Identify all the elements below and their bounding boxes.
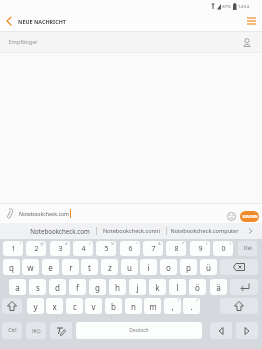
button[interactable]: f [69,279,86,295]
button[interactable]: j [129,279,146,295]
button[interactable]: h [109,279,126,295]
staticText: 6 [128,244,133,254]
button[interactable]: Notebookcheck.com [26,223,94,239]
button[interactable]: Del [238,241,257,256]
staticText: Ctrl [8,327,17,334]
staticText: l [176,282,179,293]
staticText: h [115,282,120,293]
button[interactable]: y [27,298,44,314]
button[interactable]: Notebookcheck.conni [98,223,164,239]
button[interactable]: d [49,279,66,295]
staticText: 14:54 [238,3,249,9]
button[interactable]: p [180,259,197,275]
button[interactable] [220,298,258,314]
button[interactable]: s [29,279,46,295]
staticText: @ [40,241,44,246]
button[interactable]: ö [189,279,206,295]
staticText: 7 [151,244,156,254]
button[interactable]: Deutsch [76,322,202,339]
button[interactable]: 2 [26,241,46,256]
staticText: c [73,301,77,312]
button[interactable] [230,279,258,295]
staticText: 2 [34,244,39,254]
staticText: f [76,282,79,293]
staticText: q [9,262,14,273]
button[interactable]: . [183,298,200,314]
button[interactable] [2,298,22,314]
staticText: 9 [198,244,203,254]
button[interactable]: 5 [96,241,116,256]
button[interactable]: o [160,259,177,275]
button[interactable]: g [89,279,106,295]
button[interactable]: b [105,298,122,314]
staticText: 4 [81,244,86,254]
button[interactable]: m [144,298,161,314]
button[interactable] [50,322,72,339]
staticText: ü [206,262,211,273]
button[interactable]: !#☺ [26,322,46,339]
staticText: , [171,301,174,312]
button[interactable]: 9 [190,241,210,256]
button[interactable]: , [164,298,181,314]
staticText: b [111,301,116,312]
staticText: d [55,282,60,293]
button[interactable]: a [9,279,26,295]
staticText: n [131,301,136,312]
button[interactable]: ü [200,259,217,275]
staticText: m [149,301,157,312]
button[interactable]: 3 [50,241,70,256]
staticText: s [36,282,40,293]
button[interactable] [227,212,236,221]
staticText: ) [229,241,231,246]
button[interactable]: r [62,259,79,275]
button[interactable]: u [121,259,138,275]
button[interactable]: t [81,259,98,275]
button[interactable]: Notebookcheck.computer [169,223,239,239]
button[interactable]: 4 [73,241,93,256]
button[interactable] [240,11,262,31]
button[interactable]: l [169,279,186,295]
button[interactable]: Empfänger [0,32,262,52]
staticText: Notebookcheck.com [30,227,90,235]
button[interactable]: 8 [166,241,186,256]
staticText: y [33,301,38,312]
staticText: Del [244,245,252,252]
staticText: k [155,282,160,293]
button[interactable]: 0 [213,241,233,256]
button[interactable] [6,208,15,219]
button[interactable]: x [46,298,63,314]
button[interactable]: 7 [143,241,163,256]
button[interactable]: z [101,259,118,275]
staticText: 8 [174,244,179,254]
button[interactable] [236,322,258,339]
staticText: 5 [104,244,109,254]
staticText: j [136,282,139,293]
staticText: 3 [58,244,63,254]
staticText: / [89,241,91,246]
staticText: r [69,262,73,273]
button[interactable]: q [3,259,20,275]
button[interactable]: SENDEN [240,211,259,222]
button[interactable]: NEUE NACHRICHT [0,11,66,31]
button[interactable]: w [22,259,39,275]
button[interactable]: Ctrl [2,322,22,339]
button[interactable]: v [85,298,102,314]
button[interactable]: k [149,279,166,295]
staticText: g [95,282,100,293]
staticText: ? [196,298,198,303]
staticText: Empfänger [8,38,38,46]
button[interactable] [210,322,232,339]
button[interactable]: n [125,298,142,314]
staticText: * [182,241,184,246]
button[interactable] [220,259,258,275]
button[interactable]: e [42,259,59,275]
button[interactable]: c [66,298,83,314]
staticText: e [48,262,53,273]
staticText: o [166,262,171,273]
button[interactable]: ä [210,279,227,295]
button[interactable]: 1 [3,241,23,256]
button[interactable]: 6 [120,241,140,256]
staticText: Notebookcheck.conni [103,227,160,235]
staticText: % [111,241,114,246]
button[interactable]: i [140,259,157,275]
